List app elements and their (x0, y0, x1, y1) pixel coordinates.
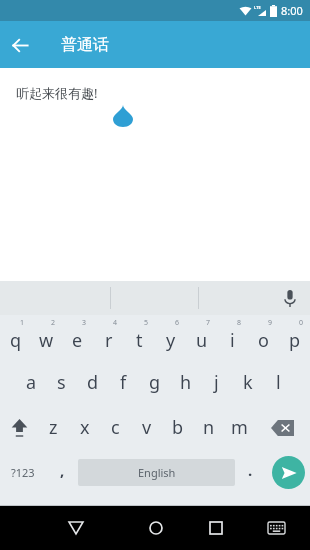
button[interactable]: 5 (124, 315, 155, 360)
button[interactable]: d (77, 360, 108, 405)
button[interactable]: 6 (155, 315, 186, 360)
staticText: c (111, 415, 120, 440)
staticText: . (248, 460, 253, 480)
staticText: i (230, 328, 235, 353)
staticText: k (243, 370, 253, 395)
button[interactable]: h (170, 360, 201, 405)
staticText: English (138, 465, 176, 480)
button[interactable]: Recents (193, 505, 238, 550)
staticText: e (72, 328, 83, 353)
button[interactable]: a (16, 360, 46, 405)
staticText: r (105, 328, 113, 353)
button[interactable]: n (193, 405, 224, 450)
button[interactable]: , (46, 450, 78, 495)
button[interactable]: Back (0, 25, 40, 65)
button[interactable]: m (224, 405, 255, 450)
staticText: m (231, 415, 248, 440)
button[interactable]: . (235, 450, 266, 495)
button[interactable]: l (263, 360, 294, 405)
button[interactable]: f (108, 360, 139, 405)
button[interactable]: Send (266, 450, 310, 495)
staticText: n (203, 415, 215, 440)
button[interactable]: English (78, 459, 235, 486)
button[interactable]: g (139, 360, 170, 405)
staticText: d (87, 370, 99, 395)
button[interactable]: Backspace (255, 405, 310, 450)
staticText: j (214, 370, 219, 395)
staticText: y (166, 328, 176, 353)
staticText: 7 (206, 318, 211, 328)
button[interactable]: 3 (62, 315, 93, 360)
staticText: g (149, 370, 161, 395)
staticText: 听起来很有趣! (16, 84, 98, 102)
button[interactable]: Back (53, 505, 98, 550)
staticText: 4 (113, 318, 118, 328)
staticText: LTE (254, 5, 261, 10)
staticText: t (136, 328, 143, 353)
staticText: , (60, 460, 65, 480)
button[interactable]: s (46, 360, 77, 405)
staticText: x (80, 415, 90, 440)
button[interactable]: 7 (186, 315, 217, 360)
staticText: z (49, 415, 58, 440)
button[interactable]: b (162, 405, 193, 450)
staticText: q (10, 328, 22, 353)
button[interactable]: v (131, 405, 162, 450)
button[interactable]: 0 (279, 315, 310, 360)
button[interactable]: x (69, 405, 100, 450)
staticText: f (120, 370, 127, 395)
button[interactable]: c (100, 405, 131, 450)
staticText: s (57, 370, 66, 395)
staticText: 8:00 (281, 3, 303, 18)
button[interactable]: z (38, 405, 69, 450)
button[interactable]: Switch keyboard (256, 508, 296, 548)
button[interactable]: j (201, 360, 232, 405)
button[interactable]: Home (133, 505, 178, 550)
button[interactable]: 8 (217, 315, 248, 360)
staticText: 5 (144, 318, 149, 328)
button[interactable]: Shift (0, 405, 38, 450)
staticText: 1 (20, 318, 25, 328)
staticText: 普通话 (61, 35, 109, 55)
staticText: ?123 (11, 465, 35, 480)
staticText: 0 (299, 318, 304, 328)
button[interactable]: 4 (93, 315, 124, 360)
staticText: a (26, 370, 37, 395)
button[interactable]: 2 (31, 315, 62, 360)
staticText: h (180, 370, 192, 395)
staticText: v (142, 415, 152, 440)
button[interactable]: Voice input (270, 281, 310, 315)
staticText: 8 (237, 318, 242, 328)
button[interactable]: 9 (248, 315, 279, 360)
staticText: u (196, 328, 208, 353)
staticText: 9 (268, 318, 273, 328)
button[interactable]: 1 (0, 315, 31, 360)
staticText: l (276, 370, 281, 395)
staticText: p (289, 328, 301, 353)
button[interactable]: k (232, 360, 263, 405)
staticText: o (258, 328, 269, 353)
button[interactable]: ?123 (0, 450, 46, 495)
staticText: b (172, 415, 184, 440)
staticText: 3 (82, 318, 87, 328)
staticText: 6 (175, 318, 180, 328)
staticText: 2 (51, 318, 56, 328)
staticText: w (39, 328, 54, 353)
